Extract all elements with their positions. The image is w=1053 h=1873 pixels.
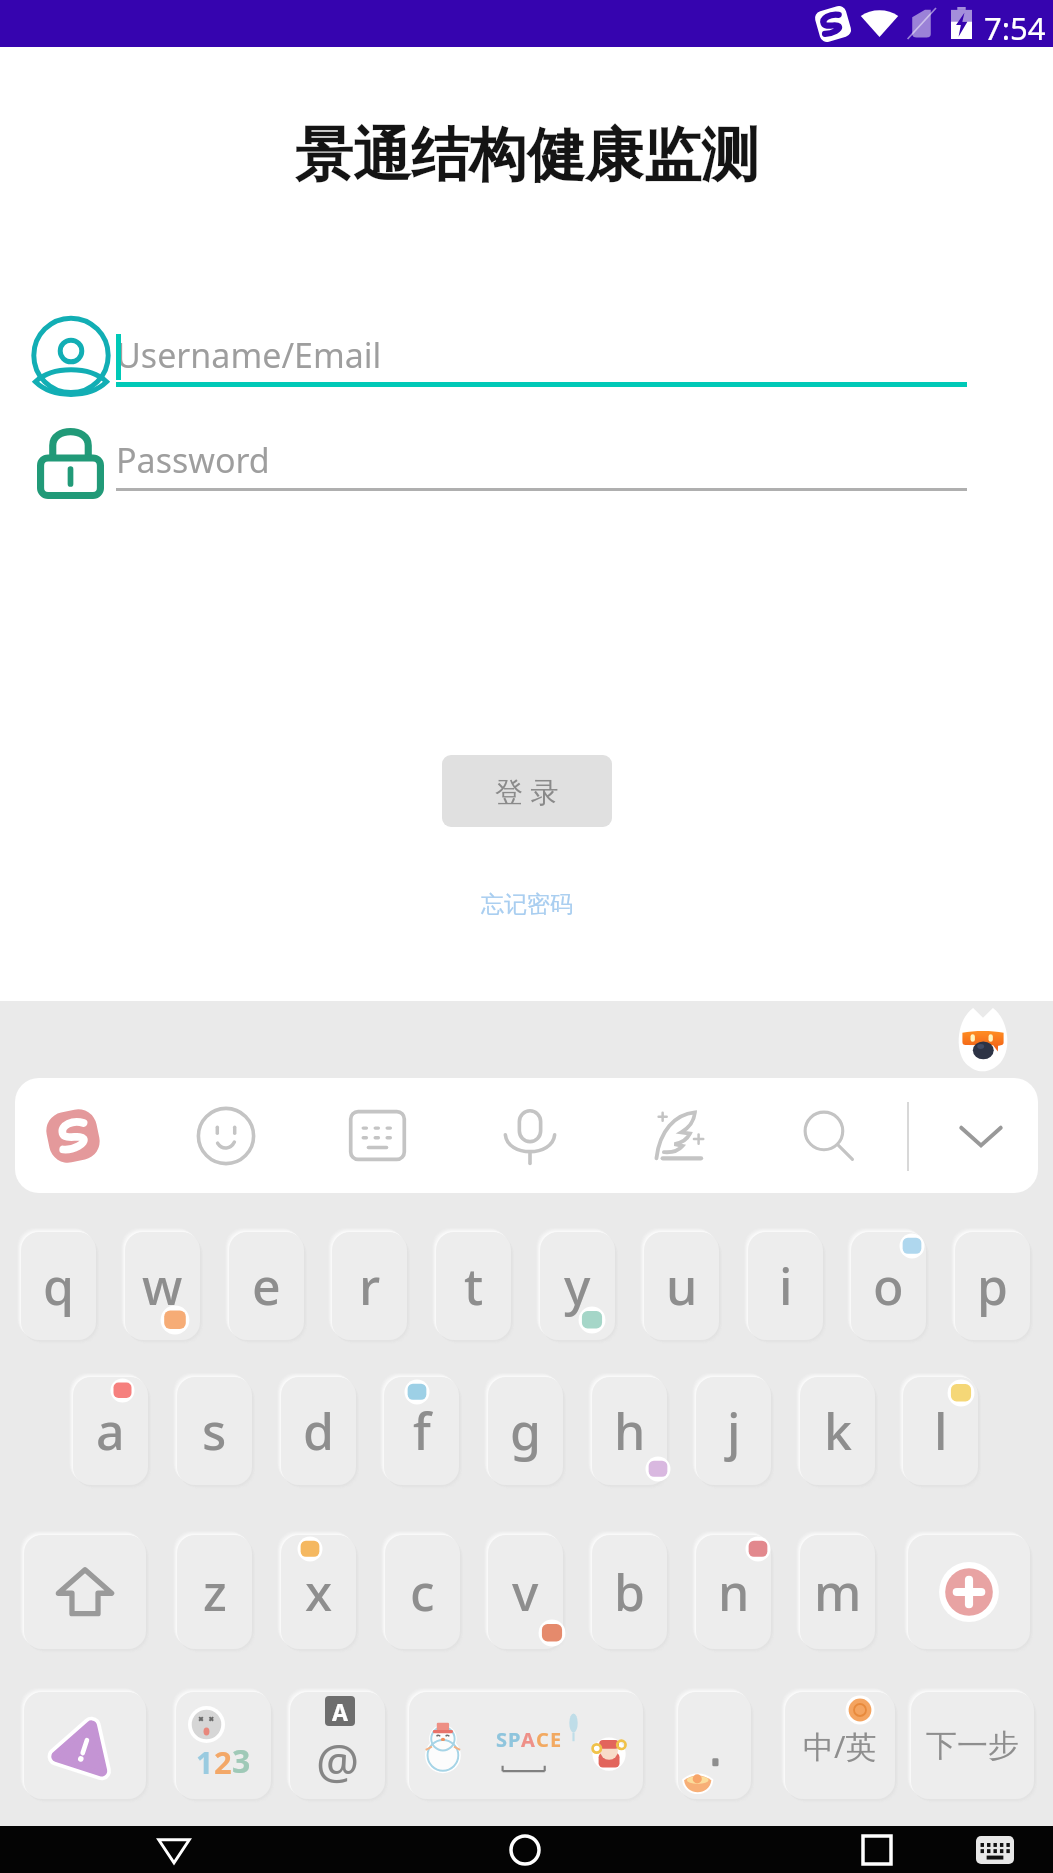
staticText: g	[510, 1397, 541, 1465]
staticText: b	[614, 1558, 645, 1626]
staticText: i	[779, 1252, 793, 1320]
button[interactable]: y	[540, 1232, 615, 1340]
staticText: P	[508, 1726, 521, 1753]
staticText: 1	[196, 1742, 214, 1783]
button[interactable]: o	[851, 1232, 926, 1340]
staticText: 登 录	[495, 772, 559, 810]
staticText: A	[332, 1696, 348, 1726]
staticText: j	[727, 1397, 741, 1465]
staticText: 景通结构健康监测	[295, 119, 759, 192]
button[interactable]: Delete	[908, 1535, 1030, 1649]
button[interactable]: e	[229, 1232, 304, 1340]
staticText: f	[413, 1397, 431, 1465]
button[interactable]: Voice input	[473, 1078, 587, 1193]
button[interactable]: i	[748, 1232, 823, 1340]
button[interactable]: w	[125, 1232, 200, 1340]
staticText: l	[934, 1397, 948, 1465]
staticText: z	[203, 1558, 227, 1626]
staticText: y	[564, 1252, 591, 1320]
staticText: s	[202, 1397, 227, 1465]
button[interactable]: s	[177, 1377, 252, 1485]
staticText: p	[977, 1252, 1008, 1320]
button[interactable]: Assistant	[954, 1006, 1012, 1071]
staticText: d	[303, 1397, 334, 1465]
button[interactable]: 中/英	[785, 1692, 895, 1799]
staticText: r	[359, 1252, 381, 1320]
staticText: t	[464, 1252, 484, 1320]
button[interactable]: u	[644, 1232, 719, 1340]
staticText: h	[614, 1397, 646, 1465]
staticText: S	[496, 1726, 508, 1753]
button[interactable]: Symbols	[24, 1692, 146, 1799]
button[interactable]: Space	[409, 1692, 643, 1799]
staticText: Username/Email	[116, 332, 382, 378]
button[interactable]: Switch keyboard	[969, 1826, 1021, 1873]
staticText: e	[252, 1252, 281, 1320]
staticText: o	[873, 1252, 904, 1320]
button[interactable]: Sogou	[16, 1078, 130, 1193]
staticText: m	[814, 1558, 862, 1626]
staticText: 2	[214, 1741, 232, 1783]
staticText: 忘记密码	[481, 890, 573, 919]
staticText: Password	[116, 437, 270, 483]
button[interactable]: Keyboard	[320, 1078, 434, 1193]
staticText: k	[824, 1397, 852, 1465]
button[interactable]: Search	[771, 1078, 885, 1193]
staticText: 中/英	[803, 1725, 877, 1767]
button[interactable]: Recents	[851, 1826, 903, 1873]
button[interactable]: Handwriting	[623, 1078, 737, 1193]
button[interactable]: Shift	[24, 1535, 146, 1649]
button[interactable]: Hide keyboard	[924, 1078, 1038, 1193]
button[interactable]: n	[696, 1535, 771, 1649]
button[interactable]: d	[281, 1377, 356, 1485]
button[interactable]: r	[332, 1232, 407, 1340]
button[interactable]: b	[592, 1535, 667, 1649]
button[interactable]: g	[488, 1377, 563, 1485]
staticText: @	[316, 1728, 360, 1793]
button[interactable]: a	[73, 1377, 148, 1485]
button[interactable]: z	[177, 1535, 252, 1649]
button[interactable]: Numbers	[176, 1692, 271, 1799]
button[interactable]: l	[903, 1377, 978, 1485]
staticText: v	[512, 1558, 539, 1626]
button[interactable]: m	[800, 1535, 875, 1649]
staticText: n	[718, 1558, 750, 1626]
button[interactable]: c	[385, 1535, 460, 1649]
button[interactable]: 登 录	[442, 755, 612, 827]
button[interactable]: q	[21, 1232, 96, 1340]
button[interactable]: x	[281, 1535, 356, 1649]
button[interactable]: v	[488, 1535, 563, 1649]
button[interactable]: 忘记密码	[481, 890, 573, 919]
staticText: a	[96, 1397, 125, 1465]
button[interactable]: 下一步	[911, 1692, 1034, 1799]
staticText: 下一步	[926, 1726, 1019, 1765]
staticText: E	[550, 1726, 562, 1753]
button[interactable]: k	[800, 1377, 875, 1485]
button[interactable]: t	[436, 1232, 511, 1340]
button[interactable]: Emoji	[169, 1078, 283, 1193]
staticText: 3	[232, 1739, 251, 1783]
button[interactable]: f	[384, 1377, 459, 1485]
staticText: c	[410, 1558, 435, 1626]
button[interactable]: Back	[148, 1826, 200, 1873]
staticText: C	[536, 1726, 550, 1753]
staticText: w	[142, 1252, 183, 1320]
staticText: A	[521, 1726, 536, 1753]
staticText: u	[666, 1252, 698, 1320]
button[interactable]: Period	[678, 1692, 751, 1799]
staticText: 7:54	[984, 7, 1046, 49]
button[interactable]: h	[592, 1377, 667, 1485]
staticText: x	[305, 1558, 333, 1626]
button[interactable]: Home	[499, 1826, 551, 1873]
button[interactable]: At	[290, 1692, 385, 1799]
button[interactable]: j	[696, 1377, 771, 1485]
staticText: q	[43, 1252, 74, 1320]
button[interactable]: p	[955, 1232, 1030, 1340]
